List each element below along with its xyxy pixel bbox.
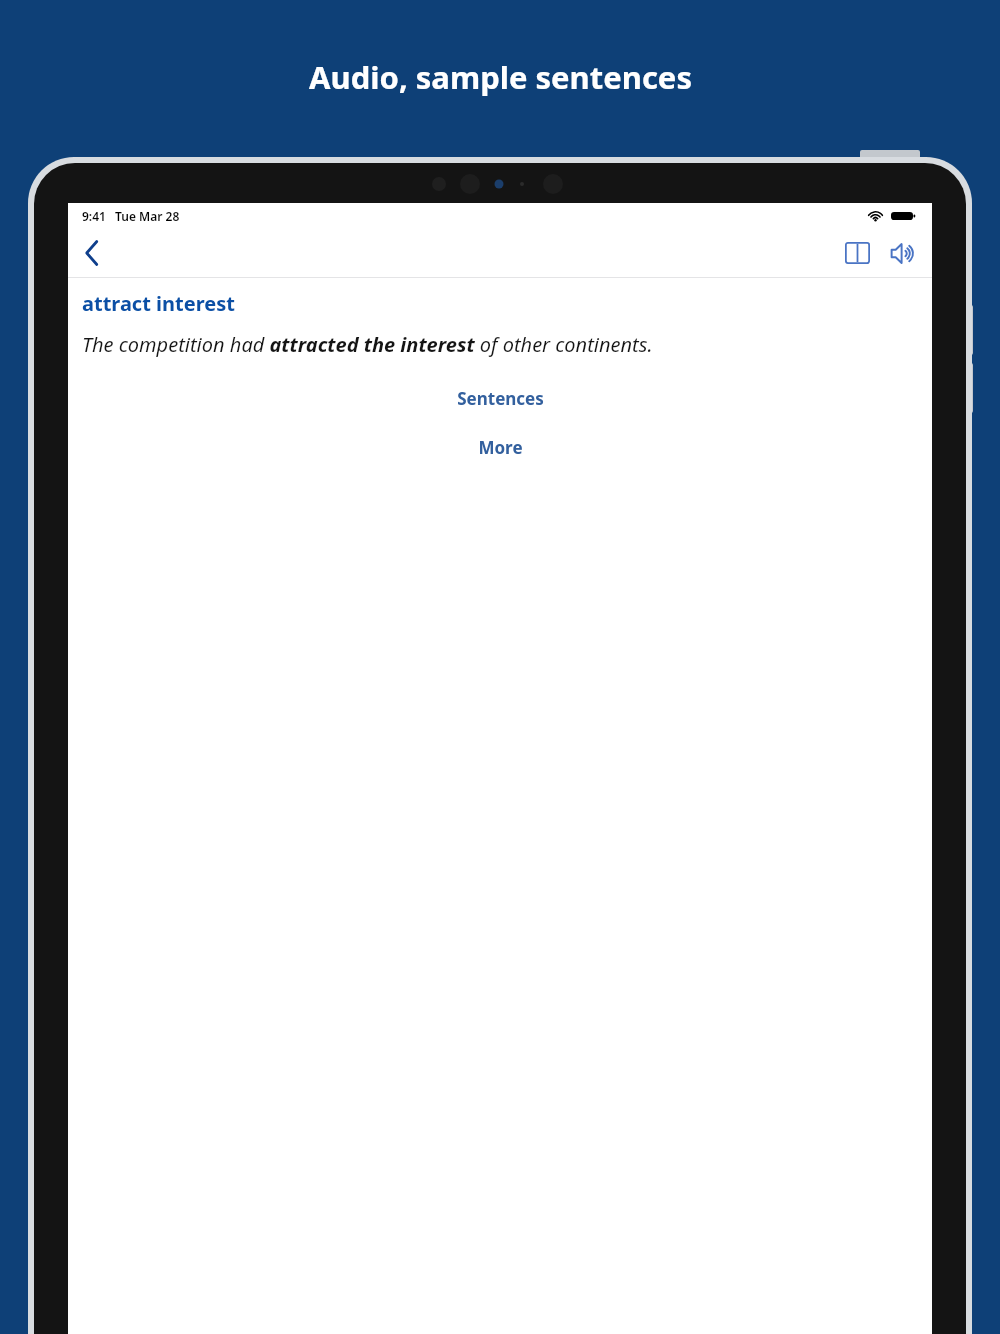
- staticText: More: [478, 436, 523, 459]
- staticText: Audio, sample sentences: [309, 56, 692, 98]
- button[interactable]: Dictionary: [834, 230, 880, 276]
- button[interactable]: More: [464, 433, 537, 462]
- staticText: attract interest: [82, 290, 235, 317]
- staticText: Tue Mar 28: [115, 208, 180, 224]
- staticText: The competition had attracted the intere…: [82, 331, 653, 358]
- staticText: 9:41: [82, 208, 106, 224]
- staticText: Sentences: [457, 387, 544, 410]
- button[interactable]: Sentences: [443, 384, 558, 413]
- button[interactable]: Back: [70, 231, 114, 275]
- button[interactable]: Play audio: [880, 230, 926, 276]
